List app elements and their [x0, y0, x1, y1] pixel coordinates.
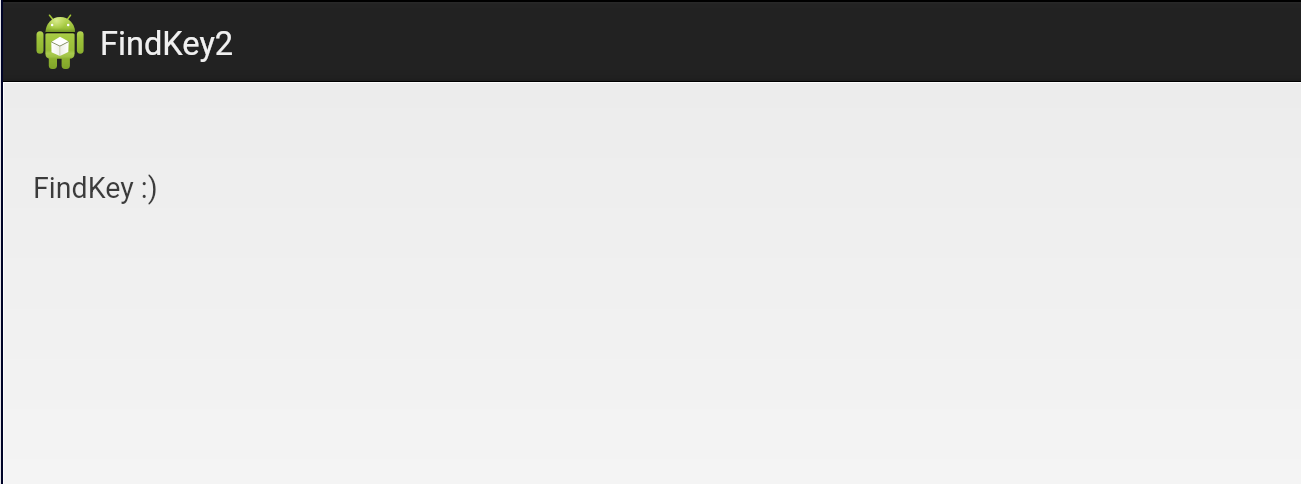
staticText: FindKey :) — [33, 171, 158, 205]
button[interactable]: FindKey2 app icon, go home — [34, 2, 220, 81]
other: FindKey2 app icon, go home — [34, 14, 86, 72]
staticText: FindKey2 — [100, 25, 234, 63]
